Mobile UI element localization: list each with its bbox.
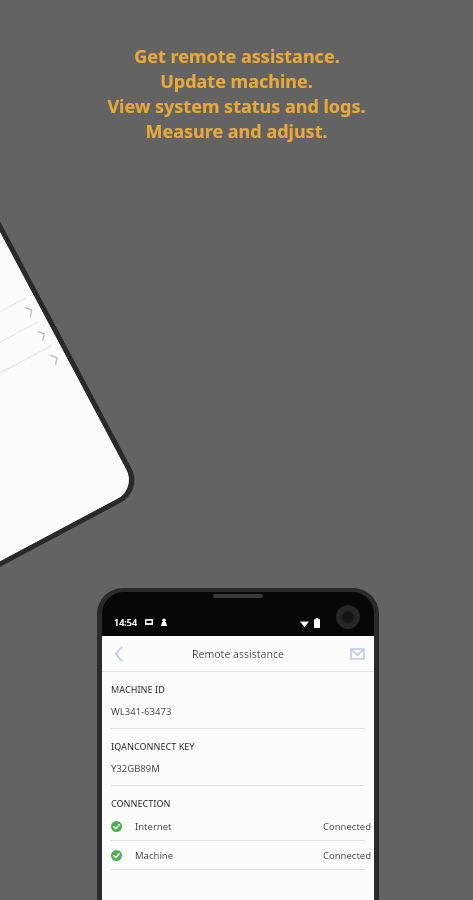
staticText: 14:54	[114, 616, 138, 628]
staticText: Connected	[323, 849, 372, 862]
button[interactable]: Machine	[102, 841, 374, 869]
staticText: View system status and logs.	[107, 94, 366, 119]
button[interactable]: System	[0, 294, 46, 401]
button[interactable]: MACHINE ID	[102, 672, 374, 728]
button[interactable]: Back	[102, 636, 136, 671]
staticText: WL341-63473	[111, 705, 172, 718]
staticText: IQANCONNECT KEY	[111, 740, 195, 752]
button[interactable]	[0, 318, 58, 425]
staticText: Get remote assistance.	[134, 44, 340, 69]
button[interactable]: Internet	[102, 812, 374, 840]
staticText: Connected	[323, 820, 372, 833]
button[interactable]: IQANCONNECT KEY	[102, 729, 374, 785]
button[interactable]: Email support	[340, 636, 374, 671]
staticText: Machine	[135, 849, 174, 862]
staticText: Measure and adjust.	[145, 119, 328, 144]
staticText: Y32GB89M	[111, 762, 160, 775]
staticText: MACHINE ID	[111, 683, 165, 695]
button[interactable]	[0, 342, 71, 449]
staticText: Remote assistance	[192, 647, 284, 661]
staticText: Internet	[135, 820, 172, 833]
staticText: CONNECTION	[111, 797, 171, 809]
staticText: Update machine.	[160, 69, 313, 94]
